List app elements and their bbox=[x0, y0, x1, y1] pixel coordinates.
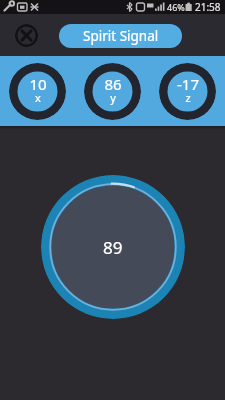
staticText: x bbox=[35, 90, 41, 105]
button[interactable]: 89 bbox=[41, 175, 185, 319]
button[interactable]: 10 bbox=[9, 63, 66, 120]
staticText: y bbox=[110, 90, 116, 105]
button[interactable]: Close bbox=[15, 24, 38, 47]
staticText: z bbox=[185, 90, 191, 105]
staticText: 86 bbox=[104, 74, 122, 94]
staticText: 21:58 bbox=[195, 0, 221, 14]
staticText: Spirit Signal bbox=[83, 27, 159, 45]
staticText: 89 bbox=[103, 236, 123, 259]
button[interactable]: -17 bbox=[159, 63, 216, 120]
button[interactable]: Spirit Signal bbox=[59, 24, 182, 48]
staticText: 46% bbox=[167, 1, 185, 13]
staticText: -17 bbox=[177, 74, 199, 94]
button[interactable]: 86 bbox=[84, 63, 141, 120]
staticText: 10 bbox=[29, 74, 47, 94]
